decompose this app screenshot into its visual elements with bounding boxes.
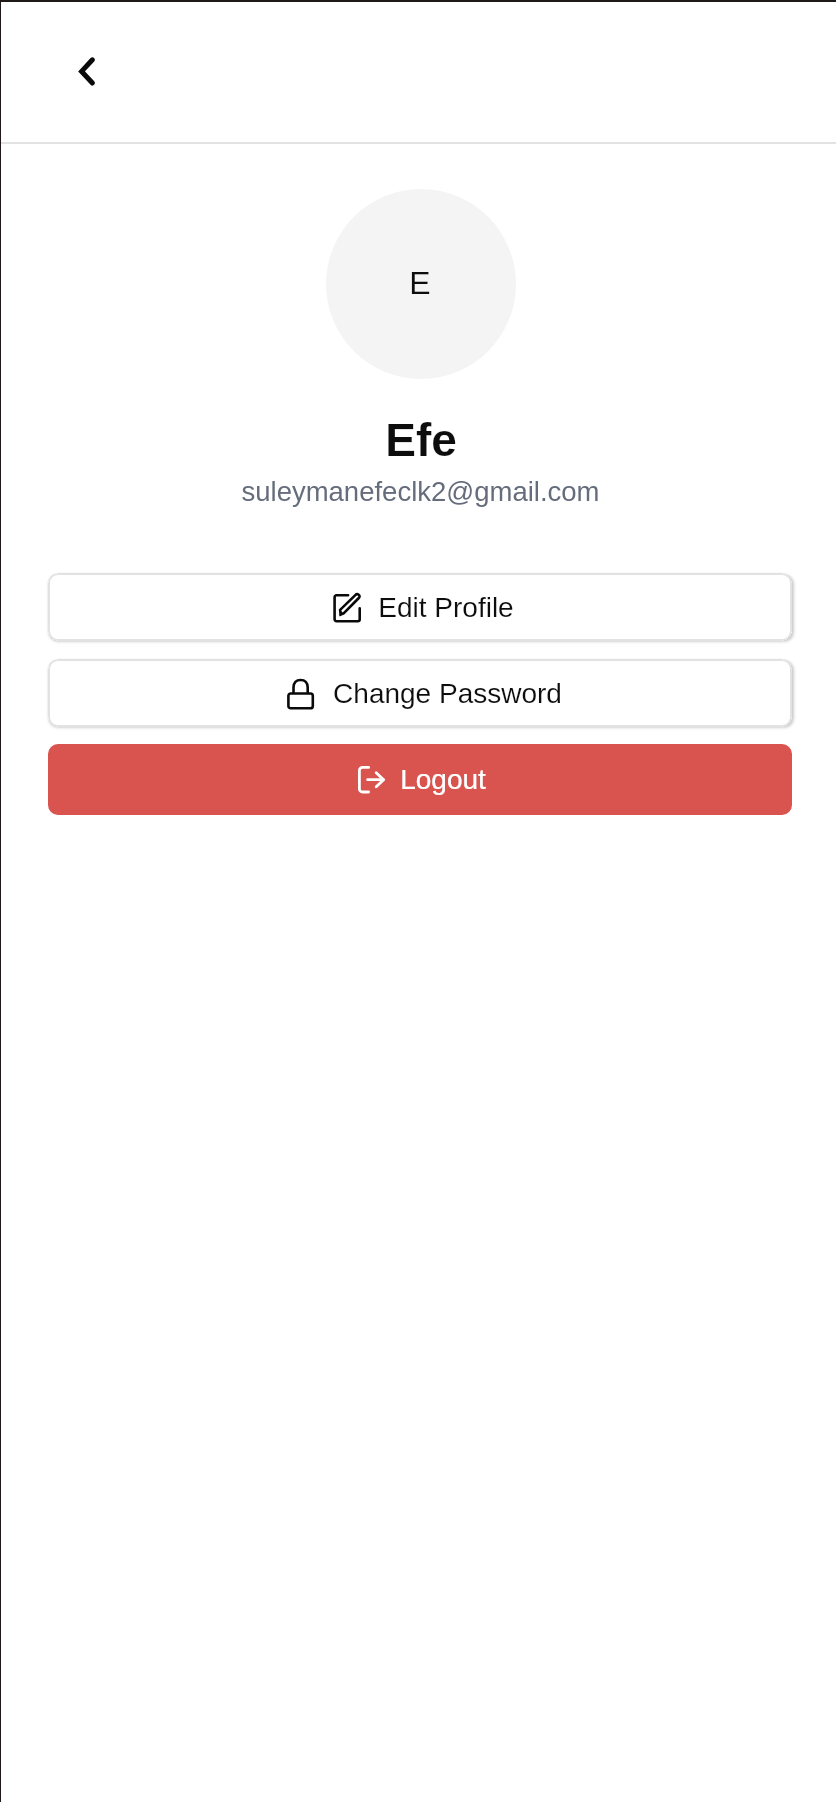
staticText: Logout [400, 764, 486, 795]
button[interactable]: Change Password [48, 659, 792, 727]
staticText: E [409, 265, 431, 301]
button[interactable]: Edit Profile [48, 573, 792, 641]
staticText: Edit Profile [378, 592, 514, 623]
button[interactable]: Back [62, 46, 112, 96]
staticText: Efe [6, 414, 836, 465]
button[interactable]: Logout [48, 744, 792, 815]
staticText: Change Password [333, 678, 562, 709]
staticText: suleymanefeclk2@gmail.com [5, 476, 836, 507]
